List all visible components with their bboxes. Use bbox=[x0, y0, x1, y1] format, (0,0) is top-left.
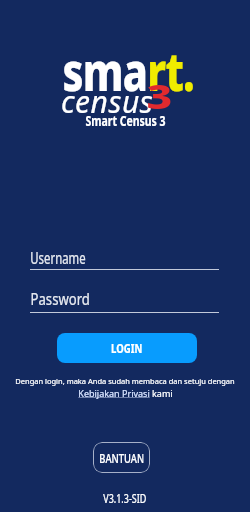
button[interactable] bbox=[30, 248, 219, 270]
staticText: 3 bbox=[146, 74, 173, 119]
button[interactable]: LOGIN bbox=[57, 333, 197, 363]
staticText: census bbox=[61, 81, 154, 122]
staticText: V3.1.3-SID bbox=[103, 490, 147, 506]
staticText: BANTUAN bbox=[99, 450, 144, 466]
staticText: LOGIN bbox=[111, 340, 143, 356]
staticText: Password bbox=[31, 288, 90, 310]
button[interactable] bbox=[30, 291, 219, 313]
button[interactable]: Kebijakan Privasi kami bbox=[78, 387, 173, 399]
button[interactable]: BANTUAN bbox=[93, 442, 150, 473]
staticText: smart. bbox=[63, 34, 194, 106]
staticText: Dengan login, maka Anda sudah membaca da… bbox=[15, 376, 235, 386]
staticText: Username bbox=[30, 247, 86, 269]
staticText: Kebijakan Privasi kami bbox=[78, 387, 173, 399]
staticText: Smart Census 3 bbox=[85, 111, 166, 130]
